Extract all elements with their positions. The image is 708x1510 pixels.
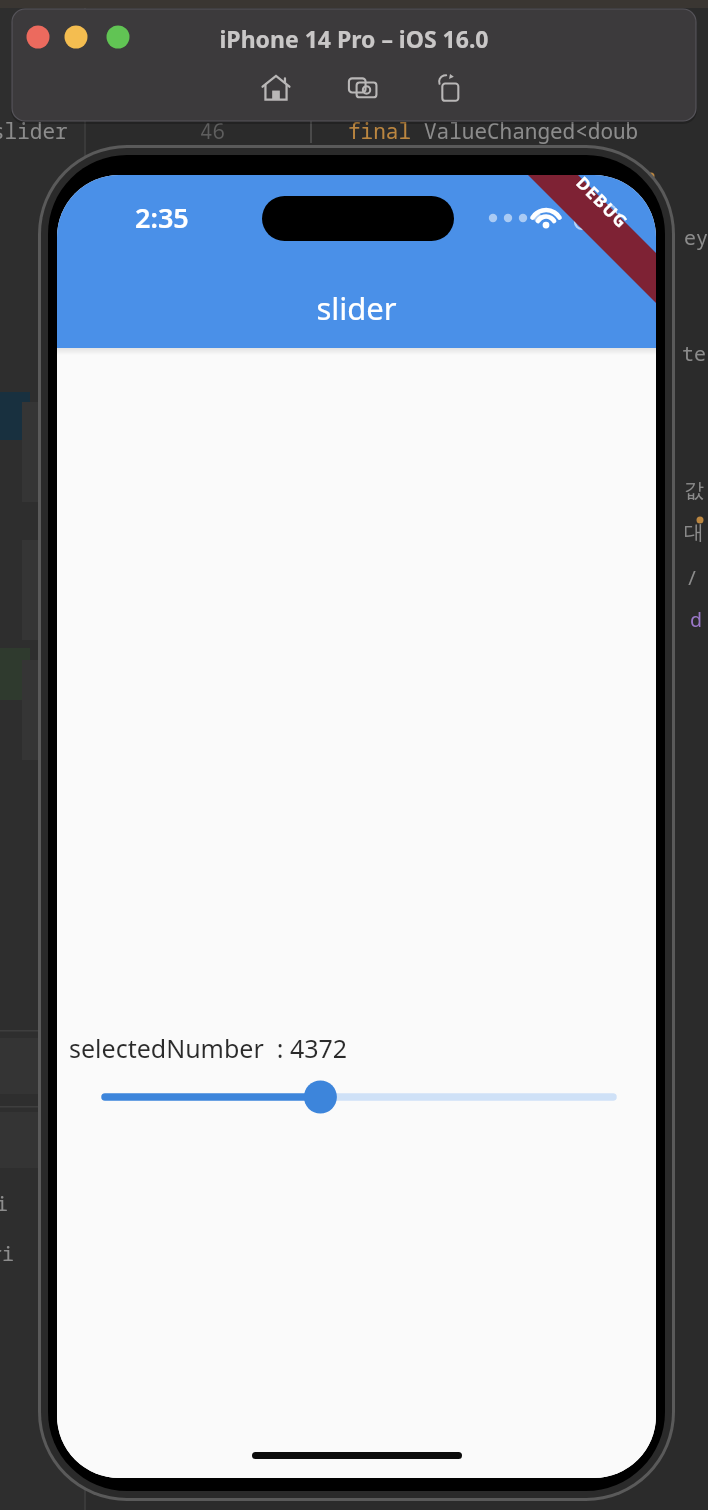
staticText: selectedNumber : 4372 — [69, 1031, 348, 1065]
staticText: slider — [0, 117, 68, 146]
staticText: ey — [684, 224, 708, 251]
staticText: 값 — [684, 478, 704, 503]
button[interactable]: Number slider — [81, 1067, 632, 1127]
button[interactable]: Rotate — [428, 66, 472, 110]
staticText: te — [682, 340, 706, 367]
staticText: / — [686, 564, 698, 591]
button[interactable]: Screenshot — [341, 66, 385, 110]
staticText: ValueChanged<doub — [424, 117, 639, 146]
staticText: slider — [316, 287, 397, 329]
staticText: 2:35 — [135, 199, 189, 236]
staticText: final — [348, 117, 424, 146]
staticText: DEBUG — [571, 175, 634, 234]
staticText: iPhone 14 Pro – iOS 16.0 — [219, 23, 489, 54]
button[interactable]: Home — [254, 66, 298, 110]
staticText: i — [0, 1190, 8, 1217]
staticText: 대 — [684, 520, 704, 545]
staticText: ri — [0, 1240, 14, 1267]
staticText: 46 — [200, 117, 226, 146]
staticText: d — [690, 606, 702, 633]
